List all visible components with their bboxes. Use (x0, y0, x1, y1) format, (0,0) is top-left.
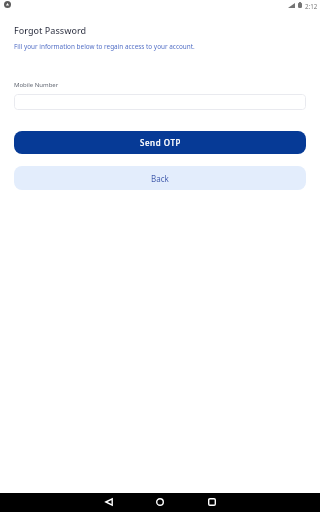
button[interactable]: Send OTP (14, 131, 306, 154)
button[interactable] (14, 94, 306, 110)
button[interactable]: Recent apps (198, 492, 226, 511)
staticText: Mobile Number (14, 81, 59, 89)
button[interactable]: Back (95, 492, 123, 511)
staticText: Back (151, 173, 169, 184)
button[interactable]: Home (146, 492, 174, 511)
staticText: Send OTP (140, 137, 181, 148)
button[interactable]: Back (14, 166, 306, 190)
staticText: Fill your information below to regain ac… (14, 42, 195, 51)
staticText: Forgot Password (14, 24, 87, 36)
staticText: 2:12 (305, 2, 318, 10)
